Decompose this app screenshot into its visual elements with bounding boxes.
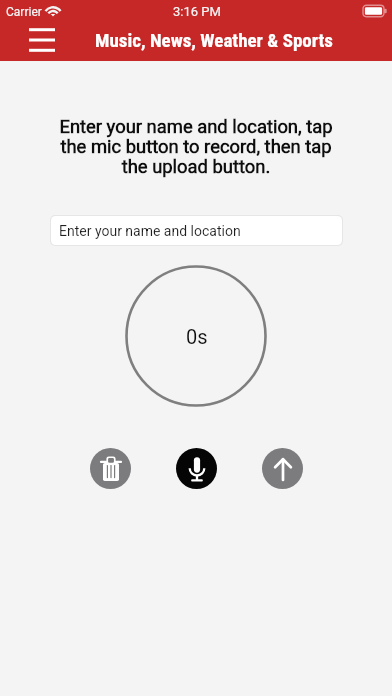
button[interactable]: Enter your name and location xyxy=(51,216,342,245)
staticText: Carrier xyxy=(6,5,42,19)
button[interactable]: Open navigation menu xyxy=(24,22,60,58)
button[interactable]: Record xyxy=(176,448,217,489)
staticText: Enter your name and location, tap the mi… xyxy=(52,116,340,177)
staticText: Enter your name and location xyxy=(59,223,241,239)
staticText: Music, News, Weather & Sports xyxy=(95,29,333,51)
button[interactable]: Upload recording xyxy=(262,448,303,489)
button[interactable]: Delete recording xyxy=(90,448,131,489)
staticText: 3:16 PM xyxy=(173,4,221,19)
staticText: 0s xyxy=(186,325,208,348)
